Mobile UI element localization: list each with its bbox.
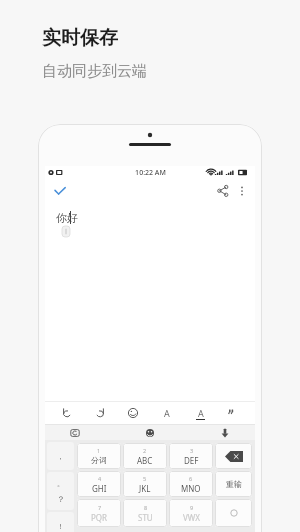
staticText: 分词	[91, 455, 107, 465]
staticText: ，	[57, 452, 64, 461]
staticText: 7	[98, 504, 102, 511]
staticText: 你好	[56, 211, 78, 225]
button[interactable]: 3	[169, 443, 213, 469]
button[interactable]: 6	[169, 471, 213, 497]
button[interactable]: 1	[77, 443, 121, 469]
staticText: A	[198, 407, 204, 419]
button[interactable]: Text color	[189, 402, 211, 424]
button[interactable]: 2	[123, 443, 167, 469]
staticText: PQR	[91, 512, 108, 523]
button[interactable]: Text cursor handle	[62, 226, 70, 237]
button[interactable]	[215, 499, 252, 527]
button[interactable]: More options	[233, 182, 251, 200]
button[interactable]: Quote	[222, 402, 244, 424]
staticText: 9	[190, 504, 194, 511]
staticText: ！	[57, 522, 64, 531]
staticText: 实时保存	[42, 26, 118, 50]
staticText: 重输	[226, 479, 242, 489]
button[interactable]: ！	[47, 512, 74, 532]
staticText: 自动同步到云端	[42, 62, 147, 81]
button[interactable]: Input method	[45, 425, 105, 440]
button[interactable]: 8	[123, 499, 167, 527]
staticText: JKL	[139, 483, 151, 494]
button[interactable]: Done	[50, 181, 70, 201]
button[interactable]: 7	[77, 499, 121, 527]
staticText: 2	[143, 447, 147, 454]
staticText: 5	[143, 475, 147, 482]
button[interactable]: Text size	[156, 402, 178, 424]
staticText: GHI	[92, 483, 107, 494]
staticText: ？	[57, 494, 65, 504]
button[interactable]: 重输	[215, 471, 252, 497]
staticText: MNO	[181, 483, 201, 494]
staticText: 。	[57, 479, 64, 488]
staticText: 6	[189, 475, 193, 482]
staticText: ABC	[137, 455, 153, 466]
button[interactable]: Share	[213, 181, 233, 201]
staticText: 3	[190, 447, 194, 454]
staticText: STU	[138, 512, 153, 523]
button[interactable]: 9	[169, 499, 213, 527]
staticText: VWX	[183, 512, 200, 523]
staticText: 8	[144, 504, 148, 511]
button[interactable]: 4	[77, 471, 121, 497]
button[interactable]: Redo	[89, 402, 111, 424]
button[interactable]: Insert emoji	[122, 402, 144, 424]
button[interactable]: 5	[123, 471, 167, 497]
button[interactable]: Backspace	[215, 443, 252, 469]
staticText: A	[164, 407, 170, 419]
button[interactable]: Emoji	[105, 425, 195, 440]
button[interactable]: Undo	[56, 402, 78, 424]
button[interactable]: 。	[47, 472, 74, 510]
staticText: 10:22 AM	[135, 168, 166, 178]
button[interactable]: ，	[47, 442, 74, 470]
staticText: DEF	[184, 455, 199, 466]
staticText: 4	[98, 475, 102, 482]
button[interactable]: Hide keyboard	[195, 425, 255, 440]
staticText: 1	[97, 447, 101, 454]
